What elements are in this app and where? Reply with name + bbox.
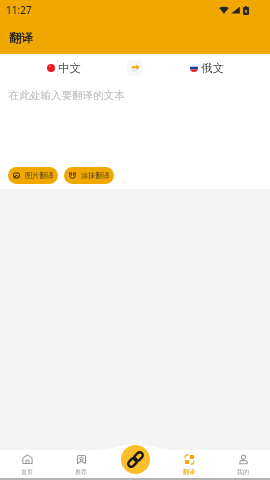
button[interactable]: 推荐 bbox=[54, 454, 108, 476]
staticText: 翻译 bbox=[9, 30, 33, 45]
button[interactable]: 首页 bbox=[0, 454, 54, 476]
staticText: 推荐 bbox=[75, 468, 87, 476]
staticText: 翻译 bbox=[183, 468, 195, 476]
button[interactable]: 中文 bbox=[0, 57, 127, 79]
button[interactable]: Link translate bbox=[121, 445, 150, 474]
staticText: 图片翻译 bbox=[25, 171, 54, 180]
staticText: 涂抹翻译 bbox=[81, 171, 110, 180]
button[interactable]: 俄文 bbox=[143, 57, 270, 79]
button[interactable]: Swap languages bbox=[127, 60, 143, 76]
button[interactable]: 翻译 bbox=[162, 454, 216, 476]
button[interactable]: 图片翻译 bbox=[8, 167, 58, 184]
staticText: 俄文 bbox=[201, 61, 224, 75]
staticText: 在此处输入要翻译的文本 bbox=[9, 89, 125, 102]
button[interactable]: 我的 bbox=[216, 454, 270, 476]
staticText: 首页 bbox=[21, 468, 33, 476]
staticText: 11:27 bbox=[6, 3, 32, 17]
staticText: 中文 bbox=[58, 61, 81, 75]
staticText: 我的 bbox=[237, 468, 249, 476]
button[interactable]: 涂抹翻译 bbox=[64, 167, 114, 184]
